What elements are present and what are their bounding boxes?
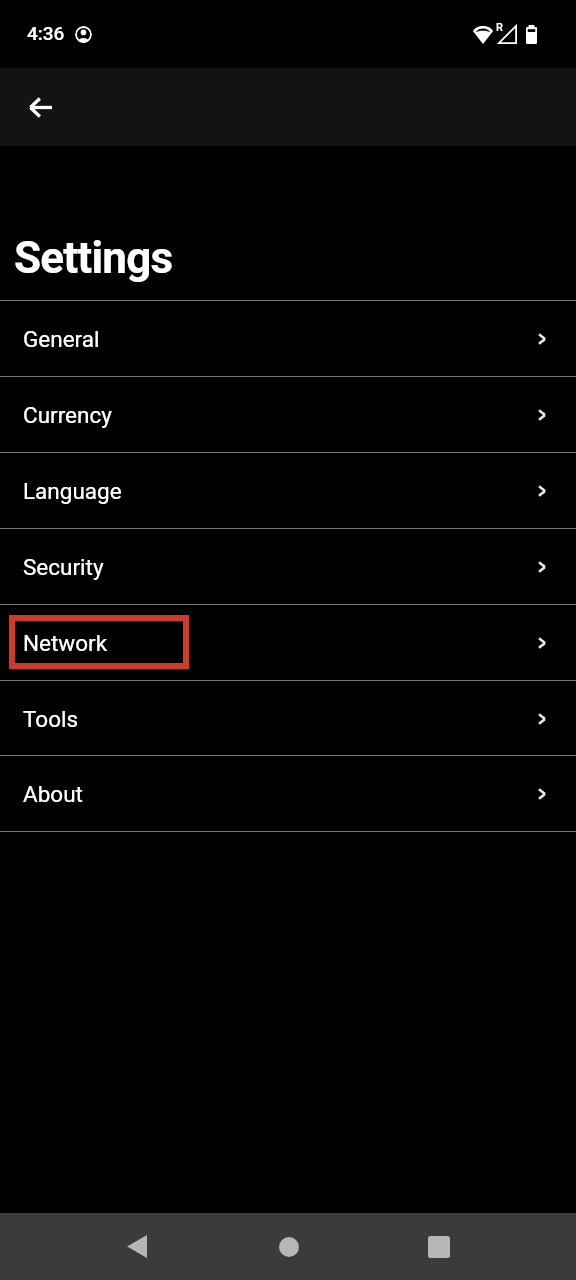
button[interactable]: Security — [0, 529, 576, 605]
staticText: Currency — [23, 402, 112, 428]
staticText: Network — [23, 630, 108, 656]
staticText: 4:36 — [27, 22, 65, 44]
button[interactable]: Home — [255, 1213, 322, 1280]
button[interactable]: Tools — [0, 681, 576, 756]
staticText: Security — [23, 554, 104, 580]
staticText: Tools — [23, 706, 79, 732]
button[interactable]: Network — [0, 605, 576, 681]
staticText: R — [496, 21, 503, 34]
button[interactable]: Recents — [405, 1213, 472, 1280]
staticText: Settings — [14, 232, 173, 284]
button[interactable]: About — [0, 756, 576, 832]
button[interactable]: Back — [103, 1213, 170, 1280]
button[interactable]: Back — [16, 83, 64, 131]
button[interactable]: Currency — [0, 377, 576, 453]
staticText: General — [23, 326, 100, 352]
staticText: About — [23, 781, 83, 807]
staticText: Language — [23, 478, 122, 504]
button[interactable]: General — [0, 301, 576, 377]
button[interactable]: Language — [0, 453, 576, 529]
